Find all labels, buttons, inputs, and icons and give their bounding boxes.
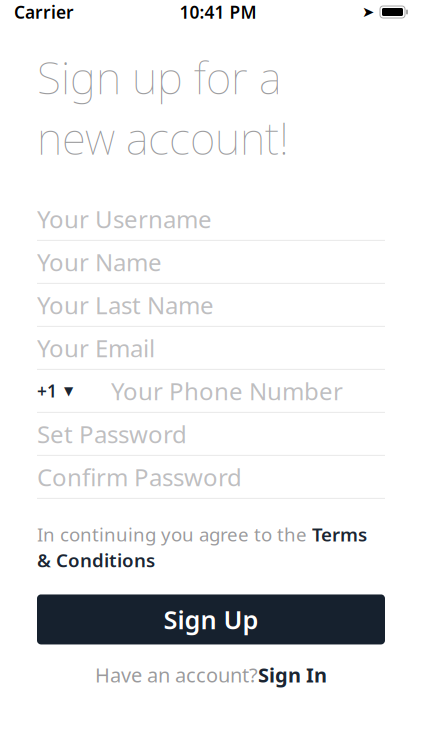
staticText: new account! [37,108,289,167]
staticText: Set Password [37,418,187,450]
button[interactable]: Set Password [37,413,385,456]
staticText: Have an account? [95,661,258,688]
staticText: In continuing you agree to the [37,522,312,547]
button[interactable]: Your Name [37,241,385,284]
staticText: Confirm Password [37,461,242,493]
staticText: 10:41 PM [179,0,256,23]
button[interactable]: Sign Up [37,594,385,644]
staticText: Sign In [258,661,327,688]
button[interactable]: Your Last Name [37,284,385,327]
button[interactable]: Confirm Password [37,456,385,499]
staticText: Your Phone Number [111,375,343,407]
staticText: +1 [37,379,57,402]
button[interactable]: +1 [37,370,385,413]
staticText: Your Username [37,203,212,235]
staticText: ▼ [64,384,73,398]
staticText: Your Name [37,246,162,278]
button[interactable]: Have an account? [0,661,422,688]
button[interactable]: Your Username [37,198,385,241]
staticText: Sign Up [163,603,258,636]
staticText: ➤ [362,4,374,20]
staticText: Your Last Name [37,289,214,321]
staticText: & Conditions [37,548,155,572]
button[interactable]: In continuing you agree to the [37,522,385,572]
staticText: Terms [312,522,367,547]
staticText: Your Email [37,332,155,364]
button[interactable]: Your Email [37,327,385,370]
staticText: Sign up for a [37,48,281,106]
staticText: Carrier [14,0,74,23]
